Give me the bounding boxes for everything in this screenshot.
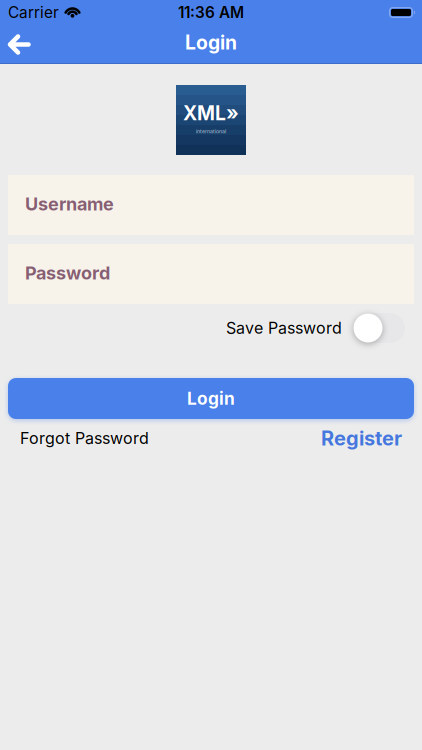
- staticText: 11:36 AM: [178, 3, 244, 22]
- staticText: Register: [321, 426, 402, 450]
- staticText: Forgot Password: [20, 428, 149, 448]
- button[interactable]: Password: [8, 244, 414, 304]
- staticText: Carrier: [8, 3, 59, 22]
- staticText: Login: [185, 31, 237, 54]
- button[interactable]: Register: [321, 426, 402, 450]
- staticText: Save Password: [226, 318, 342, 338]
- button[interactable]: [0, 35, 31, 55]
- button[interactable]: Login: [8, 378, 414, 419]
- staticText: Password: [25, 262, 110, 284]
- staticText: Login: [187, 388, 235, 409]
- button[interactable]: Forgot Password: [20, 428, 149, 448]
- staticText: XML»: [183, 102, 239, 125]
- button[interactable]: [353, 313, 405, 343]
- staticText: international: [196, 128, 226, 134]
- staticText: Username: [25, 193, 114, 215]
- button[interactable]: Username: [8, 175, 414, 235]
